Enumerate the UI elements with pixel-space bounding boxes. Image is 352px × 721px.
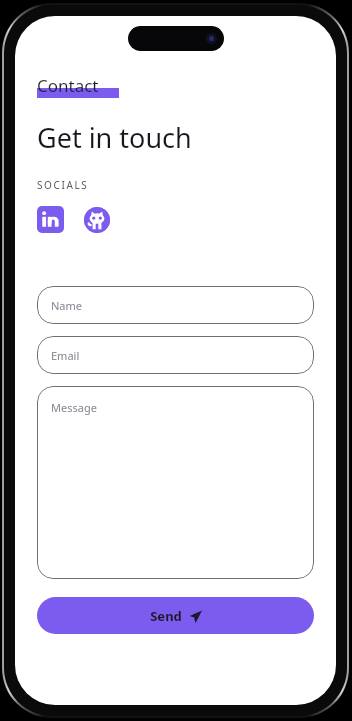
staticText: Email — [51, 348, 80, 363]
button[interactable]: GitHub — [83, 206, 110, 233]
staticText: Message — [51, 400, 97, 415]
staticText: SOCIALS — [37, 178, 89, 192]
staticText: Send — [150, 607, 182, 625]
staticText: Name — [51, 298, 83, 313]
button[interactable]: Name — [37, 286, 314, 324]
staticText: Contact — [37, 74, 99, 97]
button[interactable]: Email — [37, 336, 314, 374]
button[interactable]: Send — [37, 597, 314, 634]
button[interactable]: Message — [37, 386, 314, 579]
staticText: Get in touch — [37, 119, 192, 156]
button[interactable]: LinkedIn — [37, 206, 64, 233]
